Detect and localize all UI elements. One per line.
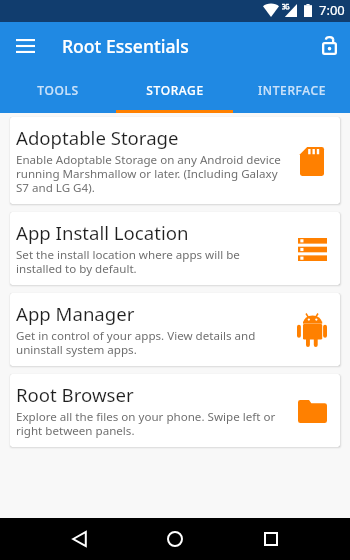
button[interactable]: Home (154, 518, 196, 560)
button[interactable]: Recent apps (250, 518, 292, 560)
button[interactable]: Back (58, 518, 100, 560)
button[interactable]: App Manager (10, 293, 340, 366)
staticText: Get in control of your apps. View detail… (16, 328, 288, 358)
staticText: App Manager (16, 301, 135, 326)
button[interactable]: Unlock (310, 26, 348, 64)
button[interactable]: INTERFACE (233, 70, 350, 113)
staticText: STORAGE (146, 82, 204, 98)
staticText: TOOLS (37, 82, 79, 98)
button[interactable]: Open navigation drawer (6, 27, 44, 65)
staticText: Root Browser (16, 382, 134, 407)
staticText: Explore all the files on your phone. Swi… (16, 409, 288, 439)
button[interactable]: Root Browser (10, 374, 340, 447)
button[interactable]: Adoptable Storage (10, 117, 340, 204)
button[interactable]: App Install Location (10, 212, 340, 285)
staticText: Enable Adoptable Storage on any Android … (16, 152, 288, 196)
staticText: Set the install location where apps will… (16, 247, 288, 277)
button[interactable]: TOOLS (0, 70, 116, 113)
staticText: Root Essentials (62, 34, 189, 58)
staticText: Adoptable Storage (16, 125, 179, 150)
button[interactable]: STORAGE (116, 70, 233, 113)
staticText: 7:00 (319, 1, 345, 19)
staticText: INTERFACE (258, 82, 326, 98)
staticText: App Install Location (16, 220, 189, 245)
